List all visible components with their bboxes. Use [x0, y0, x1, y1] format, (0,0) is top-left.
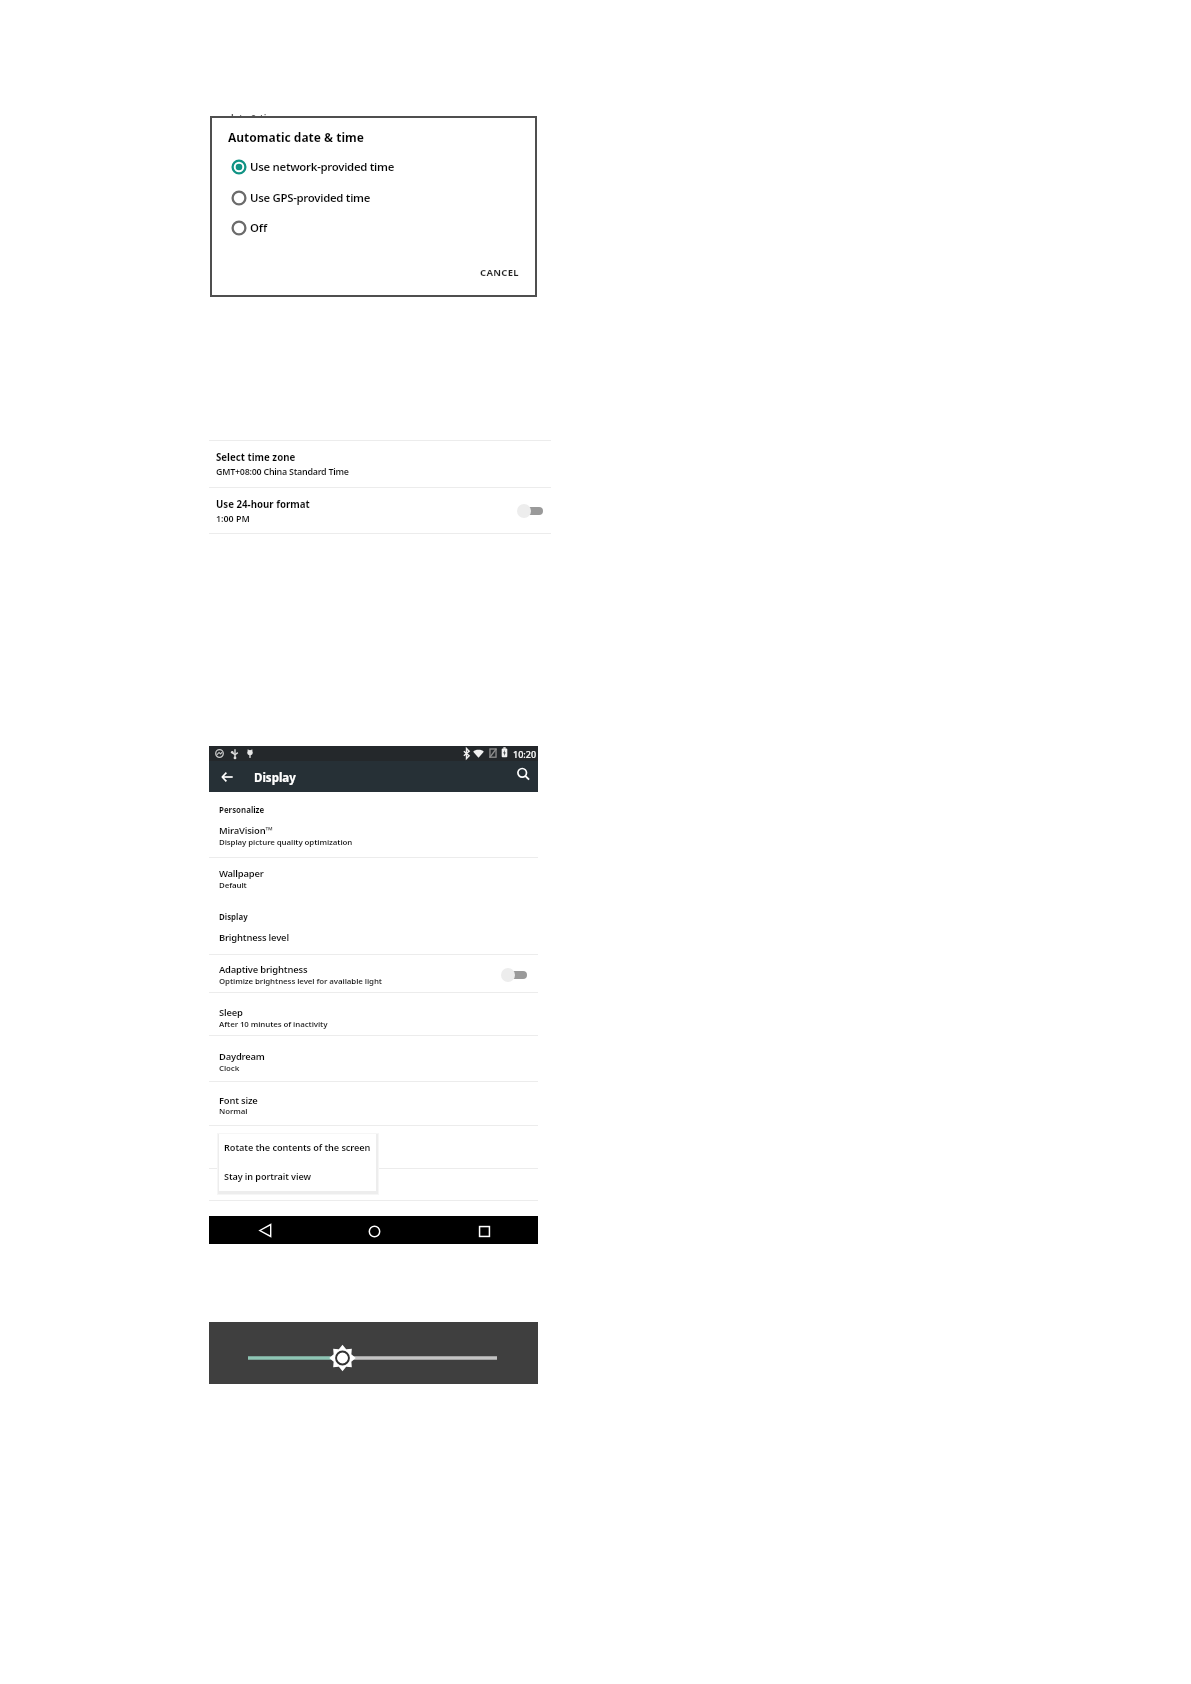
- button[interactable]: Back: [215, 765, 239, 789]
- staticText: Personalize: [219, 805, 265, 816]
- staticText: Rotate the contents of the screen: [224, 1141, 371, 1154]
- button[interactable]: Back: [253, 1218, 277, 1242]
- button[interactable]: [209, 1084, 538, 1122]
- staticText: Stay in portrait view: [224, 1170, 311, 1182]
- staticText: Display picture quality optimization: [219, 837, 353, 848]
- staticText: After 10 minutes of inactivity: [219, 1019, 328, 1030]
- staticText: Use network-provided time: [250, 159, 395, 175]
- staticText: date & time: [228, 111, 281, 116]
- staticText: Brightness level: [219, 931, 289, 944]
- staticText: CANCEL: [480, 266, 519, 279]
- button[interactable]: Stay in portrait view: [219, 1163, 376, 1189]
- button[interactable]: [209, 996, 538, 1034]
- staticText: GMT+08:00 China Standard Time: [216, 465, 349, 477]
- button[interactable]: Search: [513, 764, 533, 784]
- button[interactable]: Use GPS-provided time: [229, 186, 529, 210]
- button[interactable]: [209, 921, 538, 947]
- button[interactable]: [209, 953, 538, 991]
- staticText: 10:20: [513, 748, 537, 760]
- staticText: Select time zone: [216, 451, 296, 464]
- staticText: Default: [219, 880, 247, 891]
- staticText: 1:00 PM: [216, 512, 250, 524]
- button[interactable]: Brightness slider: [209, 1322, 538, 1384]
- staticText: Use 24-hour format: [216, 498, 310, 511]
- button[interactable]: Home: [362, 1219, 386, 1243]
- button[interactable]: [209, 441, 551, 487]
- staticText: Display: [254, 770, 296, 786]
- button[interactable]: [209, 1040, 538, 1078]
- staticText: Off: [250, 220, 267, 236]
- staticText: Display: [219, 912, 248, 923]
- button[interactable]: Rotate the contents of the screen: [219, 1134, 376, 1160]
- button[interactable]: Adaptive brightness: [501, 968, 527, 982]
- button[interactable]: [209, 814, 538, 852]
- staticText: Normal: [219, 1106, 248, 1117]
- button[interactable]: CANCEL: [480, 262, 535, 282]
- button[interactable]: Use 24-hour format: [517, 504, 543, 518]
- staticText: Sleep: [219, 1006, 243, 1019]
- button[interactable]: [210, 116, 537, 297]
- button[interactable]: Recent apps: [472, 1219, 496, 1243]
- button[interactable]: Off: [229, 216, 529, 240]
- staticText: Adaptive brightness: [219, 963, 308, 976]
- button[interactable]: Use network-provided time: [229, 155, 529, 179]
- staticText: Font size: [219, 1094, 258, 1107]
- staticText: Clock: [219, 1063, 240, 1074]
- staticText: Wallpaper: [219, 867, 264, 880]
- staticText: Optimize brightness level for available …: [219, 976, 382, 987]
- button[interactable]: [209, 857, 538, 895]
- staticText: Use GPS-provided time: [250, 190, 371, 206]
- button[interactable]: [209, 488, 551, 533]
- staticText: Daydream: [219, 1050, 265, 1063]
- staticText: Automatic date & time: [228, 129, 364, 145]
- staticText: MiraVision™: [219, 824, 273, 837]
